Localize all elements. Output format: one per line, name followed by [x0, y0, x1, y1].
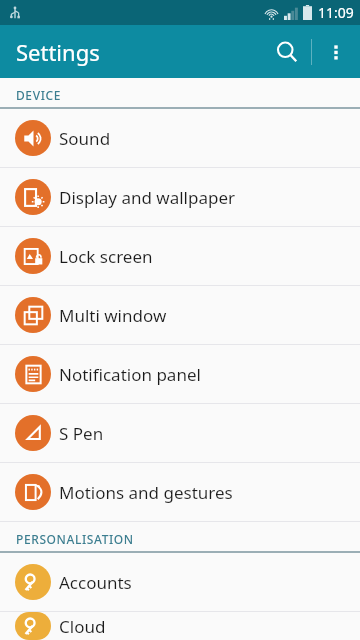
button[interactable]: Lock screen: [0, 227, 360, 285]
staticText: Lock screen: [59, 245, 153, 268]
button[interactable]: Accounts: [0, 553, 360, 611]
staticText: Sound: [59, 127, 111, 150]
staticText: PERSONALISATION: [16, 531, 134, 547]
staticText: S Pen: [59, 422, 104, 445]
staticText: Notification panel: [59, 363, 201, 386]
button[interactable]: Search: [263, 28, 311, 76]
staticText: Settings: [16, 37, 100, 67]
button[interactable]: S Pen: [0, 404, 360, 462]
button[interactable]: Notification panel: [0, 345, 360, 403]
button[interactable]: More options: [312, 28, 360, 76]
staticText: Display and wallpaper: [59, 186, 236, 209]
button[interactable]: Sound: [0, 109, 360, 167]
button[interactable]: Cloud: [0, 612, 360, 640]
staticText: Motions and gestures: [59, 481, 233, 504]
button[interactable]: Display and wallpaper: [0, 168, 360, 226]
button[interactable]: Motions and gestures: [0, 463, 360, 521]
staticText: 11:09: [318, 3, 354, 22]
button[interactable]: Multi window: [0, 286, 360, 344]
staticText: Cloud: [59, 615, 106, 638]
staticText: Accounts: [59, 571, 132, 594]
staticText: Multi window: [59, 304, 167, 327]
staticText: DEVICE: [16, 87, 61, 103]
